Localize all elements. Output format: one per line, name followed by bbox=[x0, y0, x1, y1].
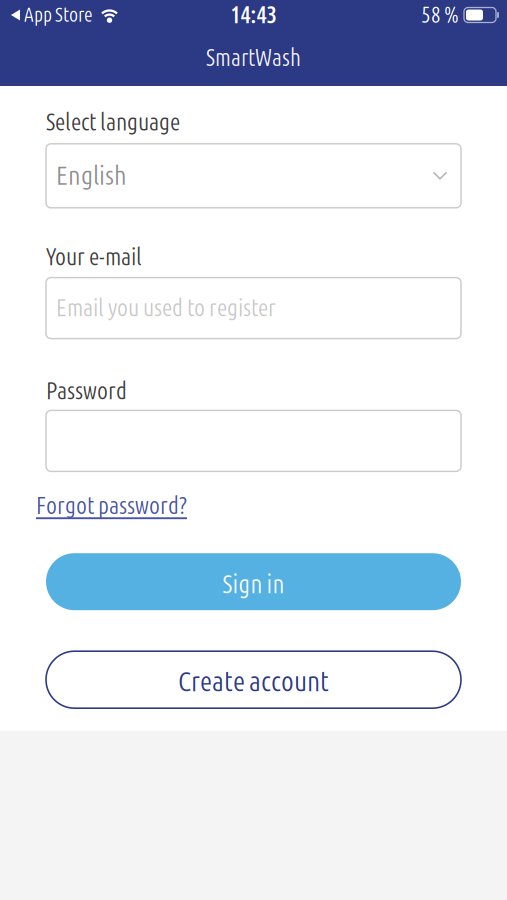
staticText: Your e-mail bbox=[46, 243, 142, 272]
staticText: Password bbox=[46, 377, 127, 405]
button[interactable]: Forgot password? bbox=[0, 491, 187, 520]
staticText: Select language bbox=[46, 108, 180, 137]
button[interactable]: Create account bbox=[0, 651, 461, 708]
staticText: Sign in bbox=[222, 569, 284, 600]
staticText: 58 % bbox=[421, 1, 459, 29]
button[interactable]: Sign in bbox=[0, 553, 461, 610]
staticText: 14:43 bbox=[230, 1, 276, 29]
staticText: App Store bbox=[24, 3, 93, 27]
staticText: Forgot password? bbox=[36, 491, 187, 520]
staticText: Create account bbox=[178, 665, 329, 698]
button[interactable]: English bbox=[0, 144, 461, 208]
staticText: SmartWash bbox=[206, 44, 301, 72]
staticText: English bbox=[56, 160, 127, 192]
staticText: Email you used to register bbox=[56, 294, 276, 322]
